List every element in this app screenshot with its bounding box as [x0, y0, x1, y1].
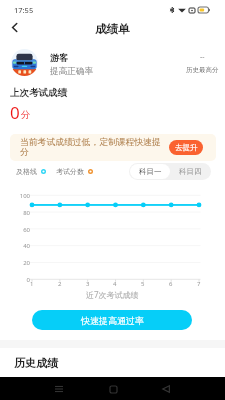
staticText: 2: [58, 280, 62, 288]
button[interactable]: 科目四: [170, 164, 210, 179]
button[interactable]: 去提升: [169, 140, 203, 155]
button[interactable]: Home: [104, 380, 122, 398]
button[interactable]: 快速提高通过率: [32, 310, 192, 330]
staticText: 成绩单: [95, 22, 130, 36]
staticText: 60: [23, 226, 30, 234]
staticText: 80: [23, 209, 30, 217]
staticText: 17:55: [14, 5, 34, 15]
staticText: 提高正确率: [50, 66, 93, 77]
staticText: 考试分数: [56, 167, 84, 176]
staticText: 快速提高通过率: [81, 315, 144, 326]
staticText: 历史成绩: [14, 356, 58, 370]
staticText: 4: [113, 280, 117, 288]
staticText: 0: [26, 276, 30, 284]
staticText: 1: [30, 280, 34, 288]
staticText: 科目四: [179, 167, 202, 176]
staticText: 7: [197, 280, 201, 288]
staticText: 20: [23, 259, 30, 267]
staticText: 游客: [50, 52, 68, 63]
button[interactable]: 科目一: [130, 164, 170, 179]
staticText: 及格线: [16, 167, 37, 176]
button[interactable]: 当前考试成绩过低，定制课程快速提分: [10, 134, 216, 161]
staticText: 当前考试成绩过低，定制课程快速提分: [20, 137, 163, 158]
staticText: 科目一: [139, 167, 162, 176]
button[interactable]: Back: [157, 380, 175, 398]
staticText: 3: [86, 280, 90, 288]
staticText: 40: [23, 242, 30, 250]
staticText: 去提升: [175, 143, 198, 152]
staticText: 0: [10, 101, 20, 124]
staticText: --: [200, 52, 205, 62]
staticText: 100: [19, 192, 30, 200]
staticText: 6: [169, 280, 173, 288]
staticText: 近7次考试成绩: [86, 289, 139, 300]
staticText: 上次考试成绩: [10, 87, 67, 99]
button[interactable]: Recents: [50, 380, 68, 398]
staticText: 分: [21, 109, 31, 121]
staticText: 5: [141, 280, 145, 288]
staticText: 历史最高分: [186, 66, 219, 74]
button[interactable]: Back: [4, 17, 24, 37]
